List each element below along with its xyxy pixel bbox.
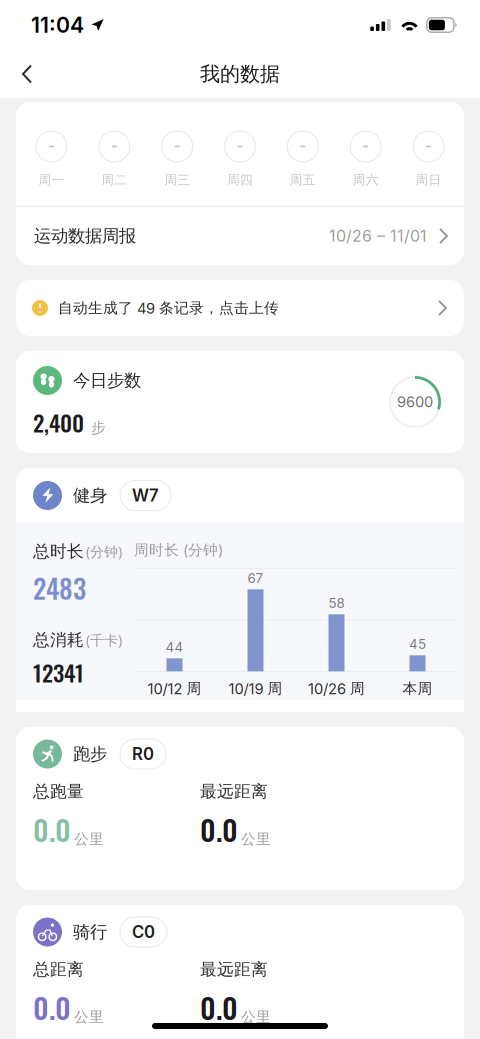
staticText: C0: [132, 922, 155, 942]
staticText: 周时长 (分钟): [134, 541, 223, 559]
staticText: 今日步数: [73, 370, 141, 391]
staticText: 周三: [164, 172, 190, 188]
staticText: 公里: [74, 830, 104, 848]
staticText: 10/12 周: [147, 679, 201, 698]
staticText: 自动生成了 49 条记录，点击上传: [58, 299, 279, 317]
staticText: 10/26 周: [308, 679, 365, 698]
button[interactable]: 自动生成了 49 条记录，点击上传: [16, 280, 464, 336]
staticText: (千卡): [85, 632, 123, 649]
staticText: 总距离: [33, 959, 84, 980]
staticText: 公里: [241, 1008, 271, 1026]
staticText: 67: [247, 570, 263, 586]
staticText: 9600: [397, 393, 433, 411]
button[interactable]: 运动数据周报: [16, 207, 464, 265]
staticText: 10/19 周: [228, 679, 282, 698]
staticText: 2483: [33, 568, 86, 607]
staticText: 总时长: [33, 541, 84, 562]
staticText: W7: [132, 485, 159, 506]
staticText: 58: [328, 595, 344, 611]
staticText: R0: [132, 744, 154, 764]
staticText: 0.0: [200, 985, 238, 1028]
staticText: 总跑量: [33, 781, 84, 802]
staticText: 周四: [227, 172, 253, 188]
staticText: (分钟): [85, 543, 123, 561]
staticText: 45: [409, 636, 426, 652]
staticText: 本周: [402, 679, 432, 698]
staticText: 12341: [33, 655, 84, 689]
staticText: 2,400: [33, 405, 84, 439]
staticText: 44: [165, 639, 183, 655]
staticText: 公里: [74, 1008, 104, 1026]
staticText: 周日: [416, 172, 442, 188]
staticText: 11:04: [31, 12, 84, 38]
staticText: 公里: [241, 830, 271, 848]
staticText: 10/26 – 11/01: [329, 226, 427, 246]
staticText: 0.0: [33, 985, 71, 1028]
staticText: 最远距离: [200, 781, 268, 802]
staticText: 周二: [101, 172, 127, 188]
staticText: 0.0: [33, 807, 71, 850]
staticText: 周六: [353, 172, 379, 188]
staticText: 步: [91, 418, 106, 437]
staticText: 最远距离: [200, 959, 268, 980]
staticText: 周一: [38, 172, 64, 188]
staticText: 健身: [73, 485, 107, 506]
staticText: 运动数据周报: [34, 225, 136, 247]
staticText: 总消耗: [33, 629, 84, 650]
staticText: 跑步: [73, 743, 107, 765]
staticText: 0.0: [200, 807, 238, 850]
staticText: 我的数据: [200, 61, 280, 87]
button[interactable]: 返回: [0, 51, 51, 96]
staticText: 周五: [290, 172, 316, 188]
staticText: 骑行: [73, 921, 107, 943]
